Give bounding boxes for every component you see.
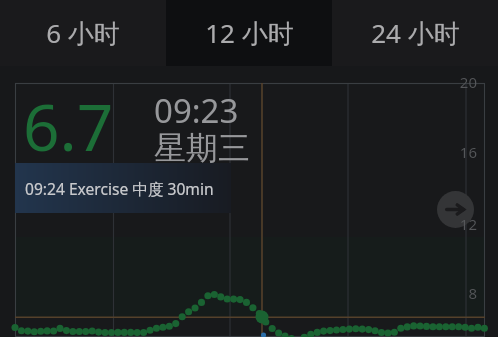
button[interactable]: Next [437, 191, 474, 228]
staticText: 09:24 Exercise 中度 30min [25, 178, 214, 199]
staticText: 8 [468, 283, 477, 303]
staticText: 16 [459, 142, 477, 162]
staticText: 09:23 [154, 88, 239, 133]
staticText: 12 [459, 214, 477, 234]
staticText: 20 [459, 72, 477, 92]
staticText: 星期三 [154, 128, 250, 168]
staticText: 12 小时 [205, 15, 294, 51]
staticText: 6 小时 [46, 15, 120, 51]
button[interactable]: 6 小时 [0, 0, 166, 66]
button[interactable]: 24 小时 [332, 0, 498, 66]
staticText: 24 小时 [371, 15, 460, 51]
staticText: 6.7 [23, 83, 114, 170]
button[interactable]: 12 小时 [166, 0, 332, 66]
button[interactable]: 09:24 Exercise 中度 30min [15, 163, 231, 213]
